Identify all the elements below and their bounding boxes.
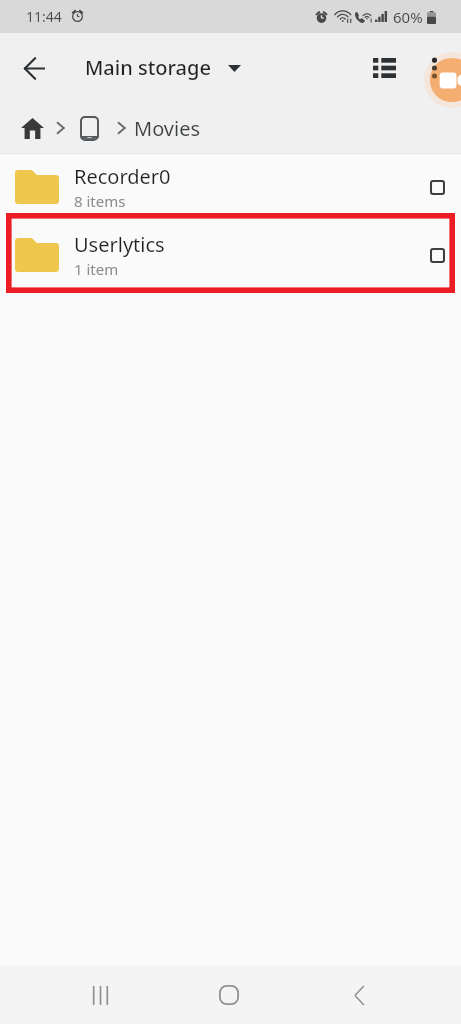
button[interactable]: Main storage xyxy=(77,46,249,89)
button[interactable]: Screen recorder xyxy=(424,52,461,108)
button[interactable]: Navigate up xyxy=(13,47,55,89)
button[interactable]: Home xyxy=(18,114,46,142)
button[interactable]: Recorder0 xyxy=(0,153,461,221)
button[interactable]: Select Recorder0 xyxy=(416,166,458,208)
staticText: Main storage xyxy=(85,54,211,81)
staticText: 60% xyxy=(393,7,423,27)
button[interactable]: Recent apps xyxy=(70,970,130,1020)
staticText: 8 items xyxy=(74,191,126,211)
button[interactable]: Internal storage xyxy=(75,114,103,142)
button[interactable]: More options xyxy=(414,48,454,88)
staticText: Userlytics xyxy=(74,231,165,258)
button[interactable]: Home xyxy=(199,970,259,1020)
button[interactable]: Userlytics xyxy=(0,221,461,289)
button[interactable]: Back xyxy=(329,970,389,1020)
button[interactable]: Select Userlytics xyxy=(416,234,458,276)
button[interactable]: Movies xyxy=(134,111,201,146)
staticText: 1 item xyxy=(74,259,119,279)
button[interactable]: List view xyxy=(362,46,406,90)
staticText: Recorder0 xyxy=(74,163,171,190)
staticText: 11:44 xyxy=(26,7,62,26)
